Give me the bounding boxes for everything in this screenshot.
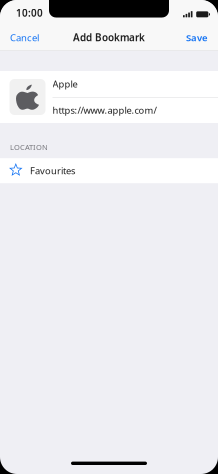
staticText: Add Bookmark [73, 31, 145, 44]
staticText: LOCATION [10, 142, 48, 152]
staticText: Cancel [10, 31, 39, 44]
button[interactable]: Save [176, 24, 218, 50]
button[interactable]: Cancel [0, 24, 49, 50]
staticText: Save [186, 31, 208, 44]
button[interactable]: Favourites [0, 158, 218, 183]
staticText: https://www.apple.com/ [52, 104, 156, 117]
staticText: Favourites [30, 164, 75, 177]
staticText: Apple [52, 78, 77, 90]
staticText: 10:00 [16, 6, 43, 19]
